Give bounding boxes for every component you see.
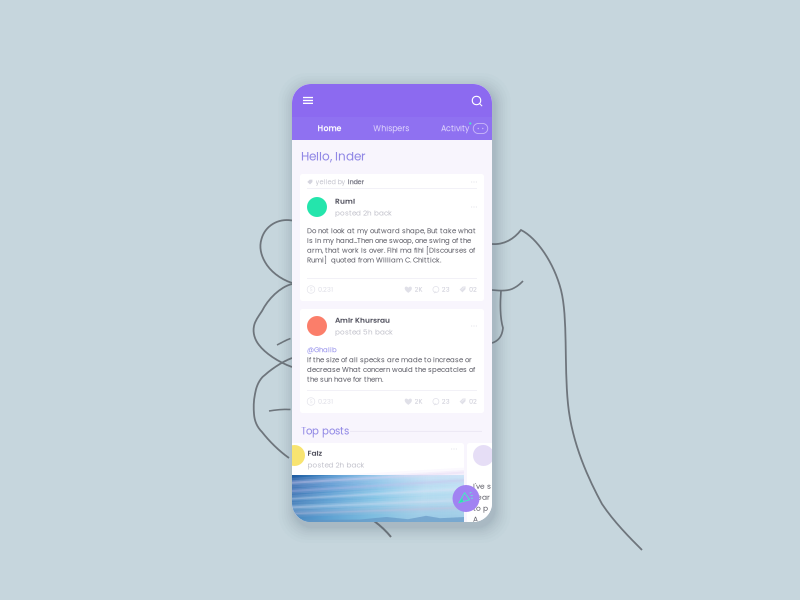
- staticText: Activity: [441, 123, 469, 134]
- staticText: Faiz: [307, 448, 322, 458]
- staticText: Home: [317, 123, 341, 134]
- staticText: posted 2h back: [307, 460, 364, 470]
- button[interactable]: Activity: [441, 123, 469, 134]
- staticText: 02: [469, 397, 477, 406]
- staticText: Do not look at my outward shape, But tak…: [307, 226, 476, 265]
- staticText: 23: [442, 397, 450, 406]
- staticText: yelled by: [316, 177, 348, 186]
- staticText: posted 2h back: [335, 208, 392, 218]
- staticText: Hello, Inder: [301, 148, 365, 165]
- button[interactable]: Compose: [452, 485, 479, 512]
- staticText: posted 5h back: [335, 327, 393, 337]
- staticText: sear: [473, 492, 490, 502]
- staticText: Top posts: [301, 424, 349, 438]
- staticText: @Ghalib: [307, 345, 337, 355]
- button[interactable]: Menu: [300, 94, 316, 107]
- button[interactable]: Whispers: [373, 123, 409, 134]
- staticText: Amir Khursrau: [335, 315, 390, 325]
- button[interactable]: Search: [470, 94, 483, 107]
- staticText: A: [473, 514, 478, 524]
- staticText: 0.231: [318, 397, 333, 406]
- staticText: to p: [473, 503, 488, 513]
- staticText: S: [309, 286, 312, 293]
- staticText: S: [309, 398, 312, 405]
- button[interactable]: Home: [317, 123, 341, 134]
- staticText: Rumi: [335, 196, 355, 206]
- staticText: inder: [348, 177, 365, 186]
- staticText: 23: [442, 285, 450, 294]
- staticText: 2K: [415, 285, 423, 294]
- staticText: Whispers: [373, 123, 409, 134]
- staticText: 02: [469, 285, 477, 294]
- staticText: I've s: [473, 481, 491, 491]
- staticText: 2K: [415, 397, 423, 406]
- staticText: 0.231: [318, 285, 333, 294]
- staticText: If the size of all specks are made to in…: [307, 355, 475, 384]
- button[interactable]: Profile: [473, 123, 488, 134]
